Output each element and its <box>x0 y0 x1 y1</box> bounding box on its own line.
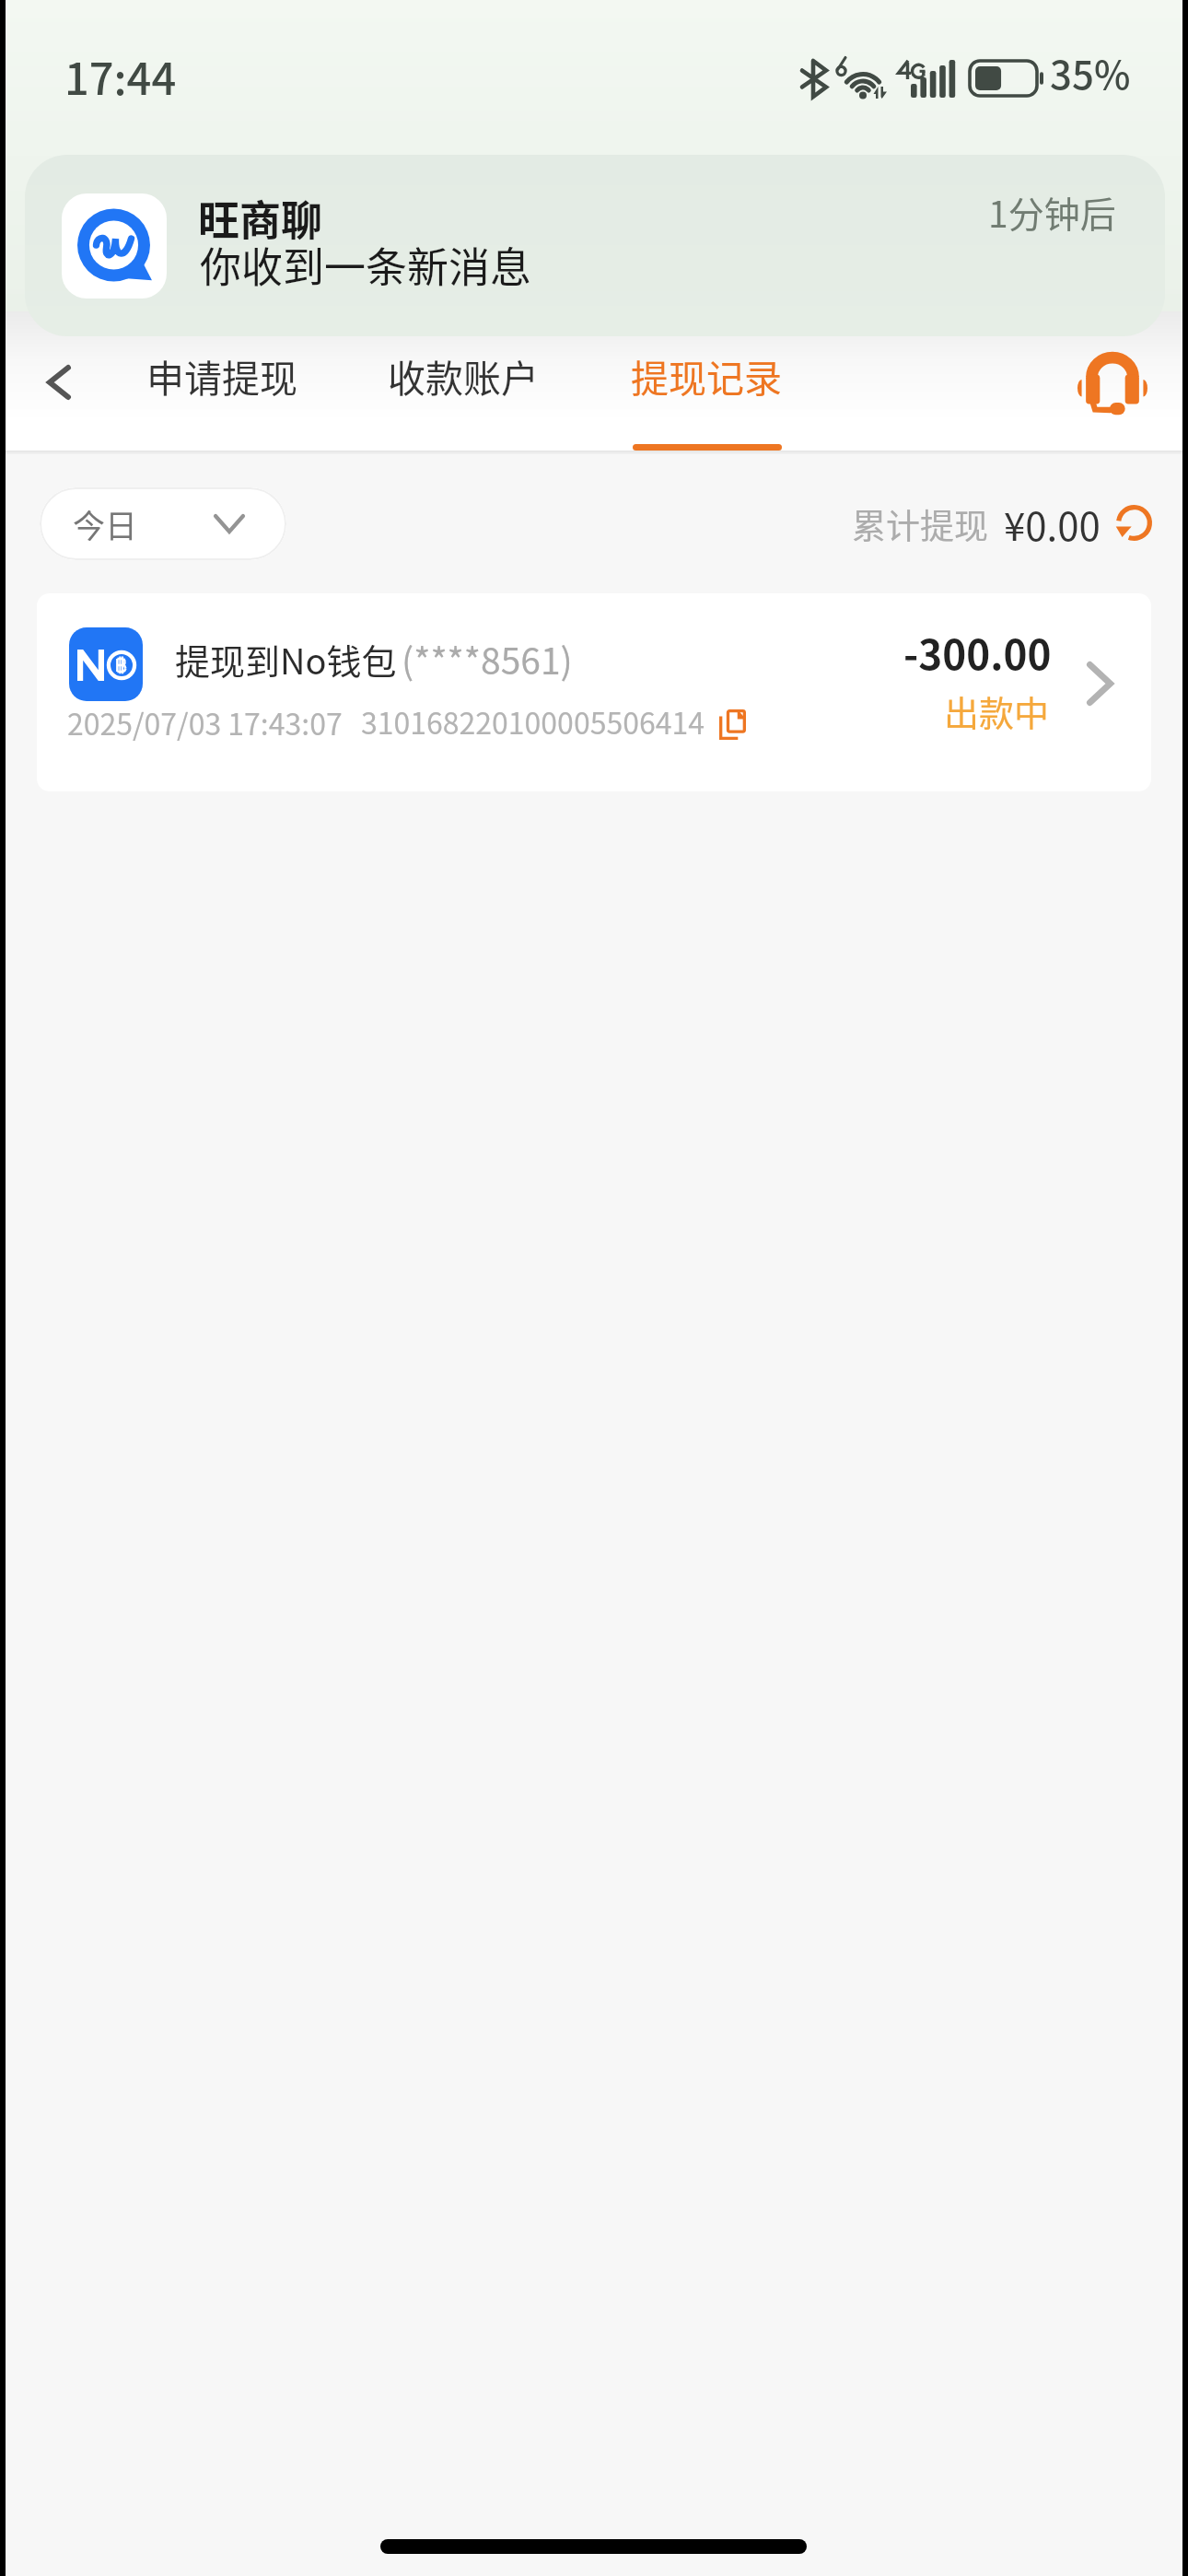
staticText: (****8561) <box>402 633 573 685</box>
staticText: 2025/07/03 17:43:07 <box>67 701 343 744</box>
button[interactable]: 提现到No钱包 <box>37 593 1151 791</box>
staticText: 17:44 <box>64 44 177 107</box>
staticText: -300.00 <box>903 623 1052 682</box>
button[interactable]: 提现记录 <box>616 332 793 452</box>
button[interactable]: 收款账户 <box>373 332 550 452</box>
button[interactable]: Customer service <box>1062 336 1163 423</box>
staticText: 310168220100005506414 <box>361 700 705 743</box>
button[interactable]: 今日 <box>40 487 286 560</box>
staticText: 累计提现 <box>852 499 988 549</box>
staticText: 35% <box>1050 44 1131 100</box>
staticText: 1分钟后 <box>988 186 1116 238</box>
button[interactable]: Copy <box>706 698 758 750</box>
staticText: 旺商聊 <box>198 188 323 248</box>
button[interactable]: 旺商聊 <box>25 155 1165 336</box>
staticText: 你收到一条新消息 <box>200 235 532 295</box>
staticText: 收款账户 <box>388 348 539 403</box>
staticText: 出款中 <box>944 685 1050 736</box>
staticText: 提现到No钱包 <box>175 634 397 685</box>
staticText: 今日 <box>73 500 138 547</box>
button[interactable]: Back <box>15 341 103 424</box>
button[interactable]: Refresh <box>1112 501 1155 544</box>
button[interactable]: 申请提现 <box>132 332 309 452</box>
staticText: ¥0.00 <box>1004 496 1101 552</box>
staticText: 申请提现 <box>146 348 297 403</box>
staticText: 提现记录 <box>631 348 782 403</box>
